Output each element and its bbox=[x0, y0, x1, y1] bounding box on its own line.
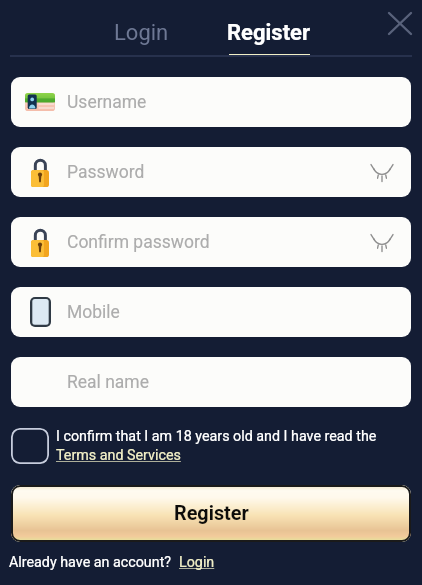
staticText: Password bbox=[67, 162, 145, 183]
staticText: I confirm that I am 18 years old and I h… bbox=[56, 428, 377, 445]
button[interactable]: Real name bbox=[11, 357, 411, 407]
button[interactable]: Terms and Services bbox=[56, 447, 181, 464]
button[interactable]: Register bbox=[205, 0, 333, 56]
button[interactable]: Close bbox=[381, 4, 419, 42]
staticText: Username bbox=[67, 92, 147, 113]
button[interactable]: Username bbox=[11, 77, 411, 127]
button[interactable]: Register bbox=[11, 485, 411, 542]
button[interactable]: Password bbox=[11, 147, 411, 197]
button[interactable]: Confirm password bbox=[11, 217, 411, 267]
button[interactable]: Login bbox=[77, 0, 205, 56]
staticText: Login bbox=[114, 20, 169, 46]
staticText: Register bbox=[174, 502, 249, 525]
staticText: Real name bbox=[67, 372, 149, 393]
button[interactable]: Confirm I am 18 years old bbox=[11, 428, 49, 464]
button[interactable]: Mobile bbox=[11, 287, 411, 337]
button[interactable]: Login bbox=[179, 554, 215, 571]
staticText: Register bbox=[227, 20, 311, 46]
staticText: Confirm password bbox=[67, 232, 210, 253]
staticText: Already have an account? bbox=[9, 554, 172, 571]
staticText: Mobile bbox=[67, 302, 120, 323]
